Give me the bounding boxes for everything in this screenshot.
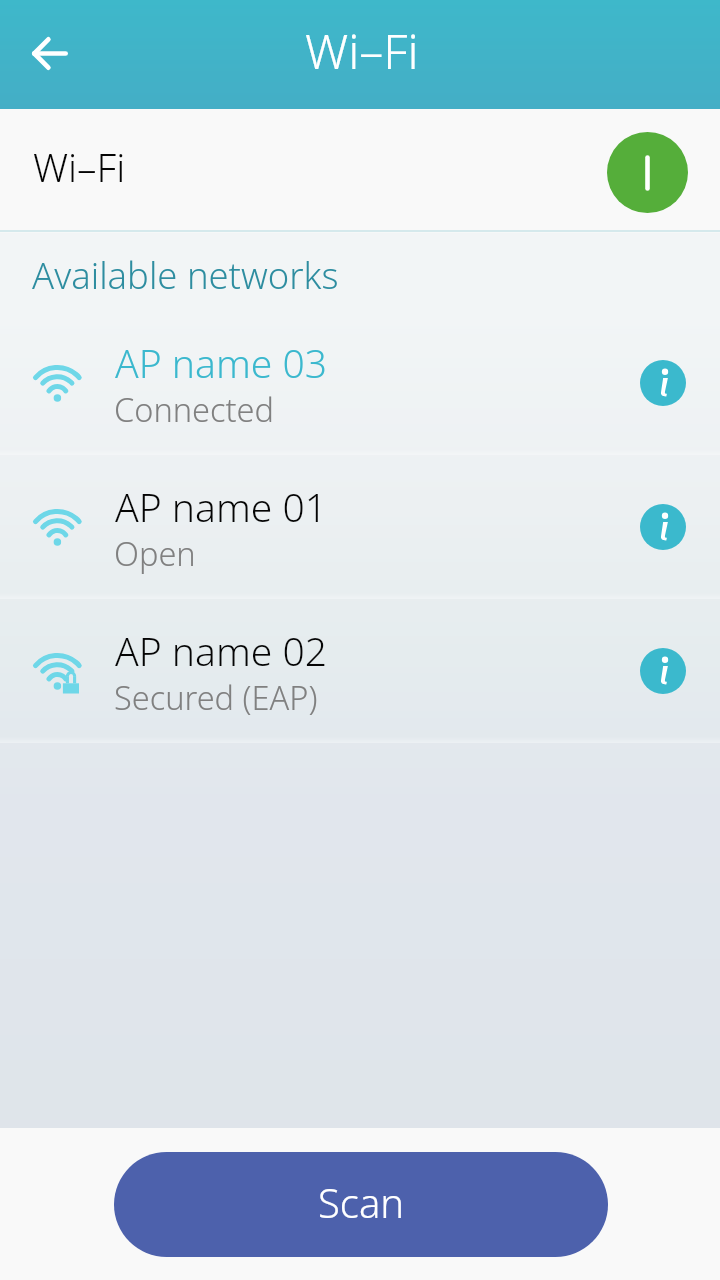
staticText: AP name 03 xyxy=(115,336,327,389)
button[interactable]: Network info xyxy=(640,504,686,550)
staticText: AP name 02 xyxy=(115,624,327,677)
staticText: Open xyxy=(114,531,196,575)
staticText: Available networks xyxy=(32,250,339,300)
button[interactable]: Back xyxy=(6,9,94,97)
staticText: Scan xyxy=(318,1175,405,1229)
button[interactable]: Wi–Fi xyxy=(0,109,720,230)
staticText: Wi–Fi xyxy=(305,18,419,83)
staticText: Secured (EAP) xyxy=(114,675,318,719)
button[interactable]: Wi-Fi on xyxy=(607,132,688,213)
button[interactable]: AP name 01 xyxy=(0,455,720,599)
staticText: Wi–Fi xyxy=(33,140,126,193)
button[interactable]: AP name 03 xyxy=(0,311,720,455)
button[interactable]: Scan xyxy=(114,1152,608,1257)
button[interactable]: Network info xyxy=(640,360,686,406)
button[interactable]: Network info xyxy=(640,648,686,694)
staticText: Connected xyxy=(114,387,274,431)
button[interactable]: AP name 02 xyxy=(0,599,720,743)
staticText: AP name 01 xyxy=(115,480,327,533)
